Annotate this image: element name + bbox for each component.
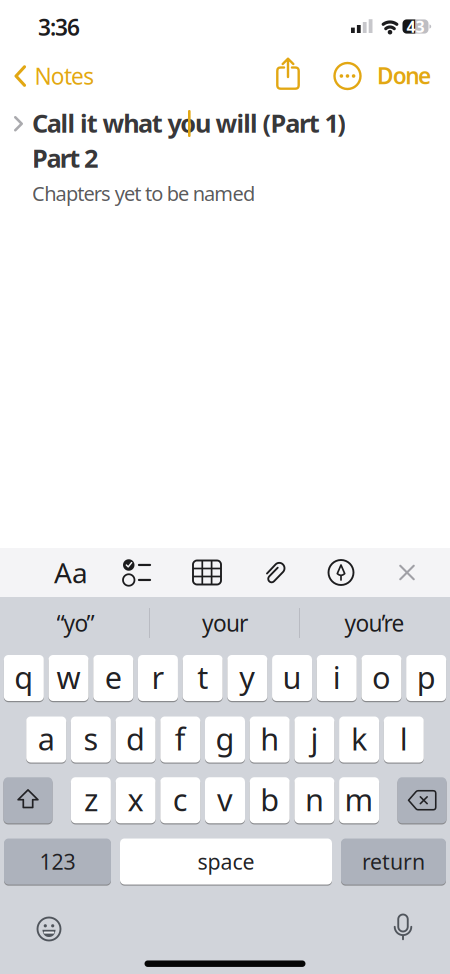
button[interactable] xyxy=(385,550,429,594)
staticText: o xyxy=(372,657,391,697)
button[interactable]: r xyxy=(138,654,178,702)
staticText: j xyxy=(310,718,318,759)
button[interactable]: g xyxy=(205,716,245,763)
button[interactable]: y xyxy=(227,654,267,702)
button[interactable]: s xyxy=(71,716,111,763)
button[interactable] xyxy=(3,776,52,824)
button[interactable]: return xyxy=(341,838,446,885)
staticText: w xyxy=(56,657,80,697)
staticText: k xyxy=(351,718,367,759)
staticText: b xyxy=(260,779,279,820)
button[interactable]: c xyxy=(160,776,200,824)
staticText: Notes xyxy=(34,61,94,91)
button[interactable]: i xyxy=(317,654,357,702)
staticText: v xyxy=(217,779,233,820)
staticText: return xyxy=(362,847,425,876)
button[interactable]: Notes xyxy=(14,61,94,91)
staticText: d xyxy=(126,718,145,759)
staticText: Chapters yet to be named xyxy=(32,180,255,207)
button[interactable] xyxy=(185,550,229,594)
button[interactable]: t xyxy=(183,654,223,702)
staticText: space xyxy=(197,847,254,876)
staticText: 3:36 xyxy=(38,12,80,42)
button[interactable] xyxy=(29,909,69,949)
button[interactable]: u xyxy=(272,654,312,702)
staticText: your xyxy=(202,608,248,638)
button[interactable] xyxy=(334,62,361,89)
button[interactable]: you’re xyxy=(300,608,449,638)
staticText: q xyxy=(14,657,33,697)
button[interactable]: e xyxy=(93,654,133,702)
staticText: y xyxy=(239,657,255,697)
button[interactable]: f xyxy=(160,716,200,763)
button[interactable]: z xyxy=(71,776,111,824)
staticText: l xyxy=(400,718,408,759)
button[interactable]: a xyxy=(26,716,66,763)
button[interactable]: j xyxy=(294,716,334,763)
button[interactable]: m xyxy=(339,776,379,824)
staticText: 123 xyxy=(39,847,75,876)
staticText: “yo” xyxy=(56,608,94,638)
button[interactable]: x xyxy=(116,776,156,824)
button[interactable] xyxy=(14,116,23,131)
staticText: you’re xyxy=(344,608,404,638)
button[interactable]: v xyxy=(205,776,245,824)
staticText: g xyxy=(215,718,234,759)
staticText: e xyxy=(105,657,122,697)
button[interactable]: p xyxy=(406,654,446,702)
staticText: p xyxy=(417,657,436,697)
staticText: h xyxy=(260,718,279,759)
staticText: n xyxy=(305,779,324,820)
button[interactable]: Done xyxy=(377,60,431,90)
button[interactable]: Aa xyxy=(49,550,93,594)
staticText: f xyxy=(175,718,186,759)
staticText: Done xyxy=(377,60,431,90)
button[interactable] xyxy=(253,550,297,594)
button[interactable]: h xyxy=(250,716,290,763)
staticText: t xyxy=(197,657,208,697)
button[interactable]: space xyxy=(120,838,332,885)
button[interactable]: l xyxy=(384,716,424,763)
staticText: 43 xyxy=(406,16,424,37)
staticText: m xyxy=(345,779,374,820)
button[interactable]: n xyxy=(294,776,334,824)
button[interactable] xyxy=(383,907,423,947)
staticText: x xyxy=(128,779,144,820)
staticText: Aa xyxy=(54,554,88,591)
staticText: c xyxy=(173,779,188,820)
button[interactable]: k xyxy=(339,716,379,763)
staticText: s xyxy=(83,718,98,759)
button[interactable]: 123 xyxy=(4,838,111,885)
button[interactable] xyxy=(319,550,363,594)
staticText: u xyxy=(282,657,301,697)
button[interactable]: your xyxy=(150,608,300,638)
button[interactable]: w xyxy=(48,654,88,702)
button[interactable]: q xyxy=(4,654,44,702)
button[interactable]: b xyxy=(250,776,290,824)
staticText: Call it what you will (Part 1) xyxy=(32,106,346,140)
staticText: z xyxy=(84,779,98,820)
button[interactable]: o xyxy=(361,654,401,702)
staticText: a xyxy=(38,718,55,759)
staticText: Part 2 xyxy=(32,141,98,175)
button[interactable] xyxy=(114,550,158,594)
button[interactable] xyxy=(397,776,446,824)
button[interactable]: d xyxy=(116,716,156,763)
button[interactable]: “yo” xyxy=(1,608,150,638)
staticText: i xyxy=(333,657,341,697)
button[interactable] xyxy=(276,57,300,90)
staticText: r xyxy=(151,657,164,697)
